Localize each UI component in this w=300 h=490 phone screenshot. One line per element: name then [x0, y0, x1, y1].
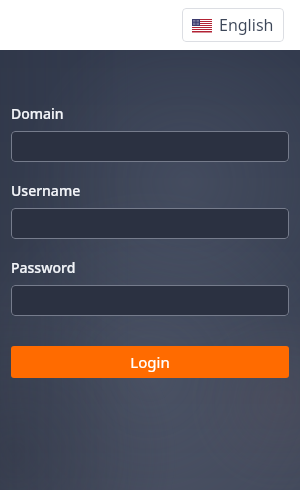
button[interactable]: [11, 285, 289, 316]
other: United States flag: [192, 19, 212, 32]
staticText: Domain: [11, 104, 64, 123]
button[interactable]: [11, 131, 289, 162]
staticText: Username: [11, 181, 81, 200]
button[interactable]: United States flag: [182, 8, 284, 42]
button[interactable]: Login: [11, 346, 289, 378]
staticText: English: [219, 14, 274, 36]
staticText: Login: [130, 352, 170, 372]
staticText: Password: [11, 258, 76, 277]
button[interactable]: [11, 208, 289, 239]
